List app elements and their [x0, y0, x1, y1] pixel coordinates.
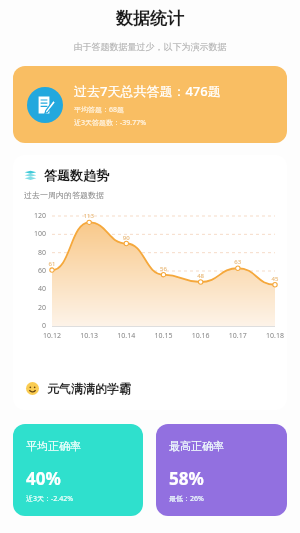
- staticText: 过去一周内的答题数据: [24, 190, 104, 200]
- staticText: 最高正确率: [169, 439, 224, 453]
- button[interactable]: 答题数趋势: [13, 155, 287, 410]
- staticText: 答题数趋势: [44, 167, 109, 183]
- other: Smiley: [26, 382, 39, 395]
- button[interactable]: 平均正确率: [13, 424, 143, 516]
- button[interactable]: 过去7天总共答题：476题: [13, 66, 287, 143]
- staticText: 近3天答题数：-39.77%: [74, 118, 146, 128]
- staticText: 平均正确率: [26, 439, 81, 453]
- staticText: 58%: [169, 467, 204, 490]
- staticText: 元气满满的学霸: [47, 381, 131, 396]
- staticText: 40%: [26, 467, 61, 490]
- staticText: 最低：26%: [169, 494, 204, 504]
- button[interactable]: 最高正确率: [156, 424, 287, 516]
- staticText: 数据统计: [0, 8, 300, 29]
- staticText: 由于答题数据量过少，以下为演示数据: [0, 41, 300, 52]
- staticText: 平均答题：68题: [74, 105, 125, 115]
- staticText: 过去7天总共答题：476题: [74, 82, 221, 100]
- button[interactable]: Smiley: [26, 381, 131, 396]
- staticText: 近3天：-2.42%: [26, 494, 73, 504]
